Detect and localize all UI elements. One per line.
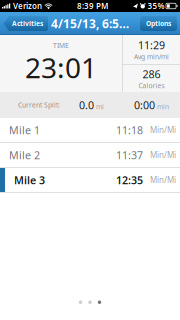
staticText: Min/Mi	[150, 175, 176, 185]
staticText: Options	[146, 19, 171, 28]
staticText: Mile 2	[9, 148, 40, 162]
staticText: 12:35	[116, 173, 143, 187]
staticText: Calories	[138, 81, 164, 90]
staticText: Mile 3	[14, 173, 45, 187]
staticText: min	[157, 102, 169, 111]
button[interactable]: Mile 3	[0, 168, 180, 192]
staticText: Current Split:	[18, 101, 60, 109]
staticText: 11:29	[138, 38, 165, 52]
staticText: 4/15/13, 6:5…	[51, 15, 129, 31]
staticText: 11:18	[116, 123, 143, 137]
staticText: Avg min/mi	[134, 52, 169, 61]
staticText: 35%	[147, 1, 164, 11]
staticText: mi	[96, 102, 104, 111]
staticText: 11:37	[116, 148, 143, 162]
staticText: 0:00	[134, 98, 155, 112]
staticText: Min/Mi	[150, 150, 176, 160]
staticText: Activities	[12, 19, 43, 28]
button[interactable]: Options	[140, 16, 177, 31]
button[interactable]: Mile 2	[0, 143, 180, 167]
staticText: Mile 1	[9, 123, 40, 137]
staticText: 8:39 PM	[77, 1, 108, 11]
staticText: 286	[142, 67, 160, 81]
button[interactable]: Activities	[3, 16, 48, 31]
staticText: Verizon	[13, 1, 42, 11]
staticText: Min/Mi	[150, 125, 176, 135]
staticText: 0.0	[79, 98, 94, 112]
button[interactable]: Mile 1	[0, 118, 180, 142]
staticText: TIME	[53, 41, 69, 50]
staticText: 23:01	[25, 49, 97, 86]
